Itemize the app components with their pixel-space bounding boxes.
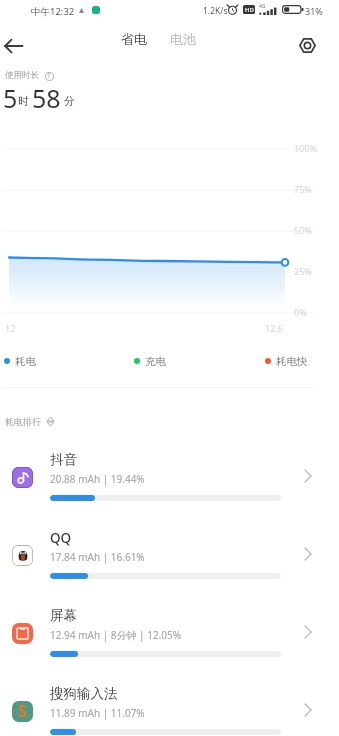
staticText: 搜狗输入法 [50, 685, 118, 702]
staticText: ? [47, 71, 51, 81]
staticText: 11.89 mAh | 11.07% [50, 706, 145, 720]
staticText: 12.6 [265, 322, 283, 334]
staticText: 耗电排行 [5, 416, 41, 427]
staticText: QQ [50, 529, 72, 547]
staticText: HD [245, 6, 254, 14]
button[interactable]: Settings [289, 27, 325, 63]
staticText: 中午12:32 [31, 5, 75, 18]
staticText: 4G [259, 3, 266, 10]
button[interactable]: QQ [0, 517, 339, 589]
button[interactable]: 省电 [113, 27, 155, 51]
staticText: 抖音 [50, 451, 77, 468]
staticText: 20.88 mAh | 19.44% [50, 472, 145, 486]
staticText: 耗电快 [276, 355, 308, 368]
button[interactable]: 耗电 [4, 352, 36, 370]
button[interactable]: Help [41, 68, 57, 84]
staticText: 12.94 mAh | 8分钟 | 12.05% [50, 628, 182, 642]
staticText: 58 [32, 81, 61, 115]
staticText: 0% [294, 306, 307, 318]
staticText: 使用时长 [5, 70, 39, 81]
button[interactable]: Back [0, 28, 31, 64]
staticText: 时 [18, 94, 29, 108]
staticText: S [18, 701, 27, 721]
staticText: 50% [294, 224, 312, 236]
staticText: 12 [5, 322, 16, 334]
button[interactable]: 屏幕 [0, 595, 339, 667]
staticText: 31% [305, 5, 323, 17]
staticText: 电池 [170, 31, 196, 47]
staticText: 5 [3, 81, 18, 115]
staticText: 屏幕 [50, 607, 77, 624]
staticText: 耗电 [15, 355, 36, 368]
button[interactable]: S [0, 673, 339, 736]
button[interactable]: 耗电快 [265, 352, 308, 370]
staticText: 省电 [121, 31, 147, 47]
staticText: 75% [294, 183, 312, 195]
button[interactable]: 电池 [162, 27, 204, 51]
staticText: 25% [294, 265, 312, 277]
button[interactable]: 抖音 [0, 439, 339, 511]
staticText: 充电 [145, 355, 166, 368]
staticText: 1.2K/s [203, 5, 228, 17]
button[interactable]: 耗电排行 [5, 413, 54, 429]
staticText: 100% [294, 142, 317, 154]
staticText: 分 [64, 94, 75, 108]
button[interactable]: 充电 [134, 352, 166, 370]
staticText: 17.84 mAh | 16.61% [50, 550, 145, 564]
